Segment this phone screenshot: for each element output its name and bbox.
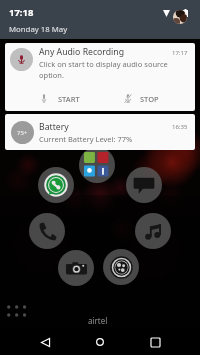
- staticText: Battery: [39, 121, 69, 133]
- button[interactable]: Phone: [29, 213, 65, 249]
- staticText: Any Audio Recording: [39, 46, 125, 58]
- button[interactable]: Messages: [126, 167, 162, 203]
- button[interactable]: STOP: [124, 88, 170, 109]
- button[interactable]: Camera: [58, 250, 94, 286]
- staticText: 16:35: [172, 123, 188, 131]
- staticText: 75+: [17, 129, 28, 137]
- button[interactable]: Recents: [143, 336, 167, 348]
- button[interactable]: Back: [33, 336, 57, 348]
- button[interactable]: Profile: [173, 10, 187, 24]
- staticText: 17:18: [9, 6, 34, 19]
- button[interactable]: 75+: [5, 114, 195, 150]
- button[interactable]: Home: [88, 336, 112, 348]
- button[interactable]: Music: [135, 213, 171, 249]
- staticText: Click on start to display audio source o…: [39, 59, 173, 80]
- button[interactable]: WhatsApp: [38, 167, 74, 203]
- button[interactable]: Social folder: [79, 147, 115, 183]
- staticText: START: [58, 94, 80, 104]
- staticText: Monday 18 May: [9, 24, 68, 35]
- button[interactable]: Any Audio Recording: [5, 43, 195, 111]
- staticText: Current Battery Level: 77%: [39, 134, 133, 144]
- button[interactable]: Browser: [103, 249, 139, 285]
- staticText: STOP: [140, 94, 159, 104]
- staticText: airtel: [88, 315, 108, 326]
- staticText: 17:17: [172, 49, 188, 57]
- button[interactable]: All apps: [3, 300, 30, 327]
- button[interactable]: START: [41, 88, 91, 109]
